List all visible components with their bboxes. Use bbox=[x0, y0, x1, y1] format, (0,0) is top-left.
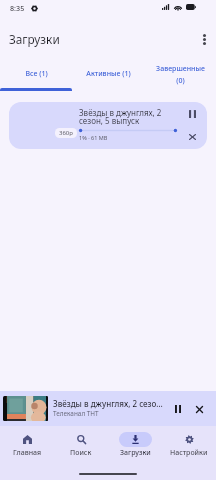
staticText: Звёзды в джунглях, 2 сезо… bbox=[53, 398, 163, 409]
staticText: Загрузки bbox=[120, 448, 151, 458]
button[interactable]: Настройки bbox=[162, 426, 216, 468]
staticText: 8:35 bbox=[10, 3, 25, 13]
staticText: Телеканал ТНТ bbox=[53, 409, 99, 418]
button[interactable]: More options bbox=[192, 27, 216, 51]
staticText: Главная bbox=[13, 448, 42, 458]
button[interactable]: Завершенные (0) bbox=[144, 56, 216, 91]
staticText: Поиск bbox=[70, 448, 92, 458]
button[interactable]: Активные (1) bbox=[72, 56, 144, 91]
button[interactable]: 360p bbox=[9, 102, 207, 149]
staticText: Настройки bbox=[170, 448, 208, 458]
staticText: 360p bbox=[59, 129, 73, 137]
button[interactable]: Close player bbox=[189, 397, 209, 421]
button[interactable]: Поиск bbox=[54, 426, 108, 468]
button[interactable]: Загрузки bbox=[108, 426, 162, 468]
button[interactable]: Главная bbox=[0, 426, 54, 468]
button[interactable]: Pause bbox=[167, 397, 189, 421]
button[interactable]: Все (1) bbox=[0, 56, 72, 91]
button[interactable]: Pause bbox=[184, 106, 200, 122]
staticText: 1% · 61 MB bbox=[79, 134, 108, 141]
button[interactable]: Звёзды в джунглях, 2 сезо… bbox=[0, 391, 216, 426]
staticText: Загрузки bbox=[9, 31, 60, 47]
button[interactable]: Cancel download bbox=[184, 129, 200, 145]
staticText: Все (1) bbox=[25, 69, 48, 79]
staticText: Активные (1) bbox=[86, 69, 131, 79]
staticText: Звёзды в джунглях, 2 сезон, 5 выпуск bbox=[79, 107, 169, 126]
button[interactable]: 360p bbox=[59, 129, 73, 137]
staticText: Завершенные (0) bbox=[156, 64, 205, 85]
